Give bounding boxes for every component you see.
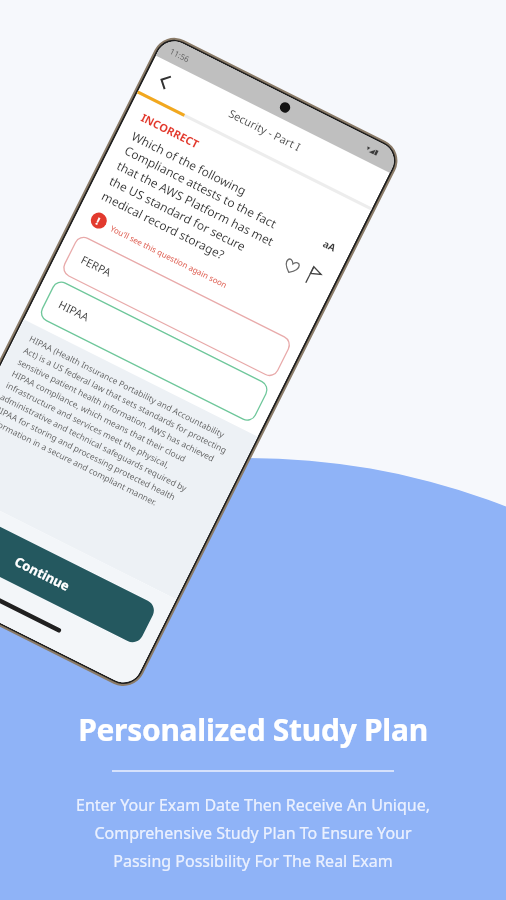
button[interactable] (0, 0, 506, 640)
staticText: Personalized Study Plan (0, 709, 506, 750)
staticText: Enter Your Exam Date Then Receive An Uni… (0, 794, 506, 872)
